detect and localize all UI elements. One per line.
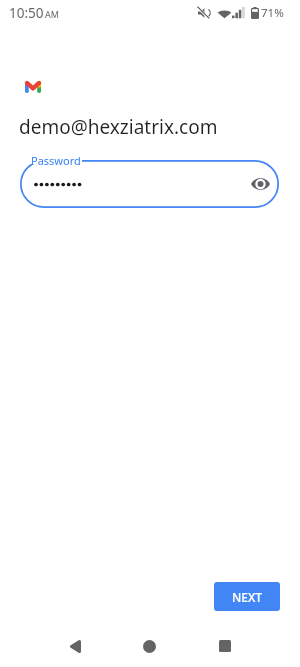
staticText: NEXT [232, 589, 263, 605]
staticText: AM [45, 8, 59, 20]
button[interactable]: Show password [236, 160, 284, 208]
button[interactable]: Back [55, 626, 95, 666]
button[interactable]: NEXT [214, 582, 280, 611]
staticText: 10:50 [9, 4, 44, 22]
button[interactable]: Recent apps [205, 626, 245, 666]
staticText: demo@hexziatrix.com [19, 114, 218, 140]
staticText: 71% [261, 5, 284, 21]
button[interactable]: Home [129, 626, 169, 666]
staticText: Password [31, 153, 81, 168]
button[interactable]: Password [20, 160, 279, 208]
